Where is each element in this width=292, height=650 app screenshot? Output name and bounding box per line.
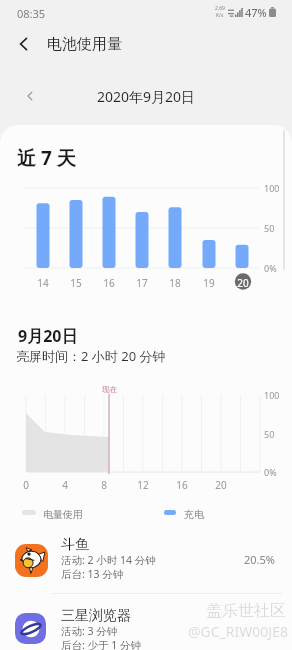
staticText: 亮屏时间：2 小时 20 分钟 <box>16 347 166 365</box>
staticText: 9月20日 <box>18 325 78 347</box>
staticText: 4 <box>55 478 75 492</box>
button[interactable]: 三星浏览器 <box>0 599 292 650</box>
staticText: 19 <box>199 276 219 290</box>
staticText: 20 <box>233 276 253 290</box>
staticText: 斗鱼 <box>61 536 89 554</box>
staticText: 50 <box>264 428 275 440</box>
staticText: 后台: 少于 1 分钟 <box>61 638 142 650</box>
staticText: 100 <box>264 182 280 194</box>
staticText: 17 <box>132 276 152 290</box>
staticText: 47% <box>245 5 267 20</box>
staticText: 活动: 2 小时 14 分钟 <box>61 553 156 567</box>
staticText: K/s <box>216 12 224 19</box>
staticText: 16 <box>172 478 192 492</box>
staticText: 近 7 天 <box>17 145 76 171</box>
staticText: 12 <box>133 478 153 492</box>
staticText: 三星浏览器 <box>61 607 131 625</box>
button[interactable]: Back <box>0 26 47 62</box>
staticText: 0% <box>264 466 277 478</box>
staticText: 20 <box>211 478 231 492</box>
staticText: 活动: 3 分钟 <box>61 624 118 638</box>
staticText: 现在 <box>102 385 117 394</box>
staticText: 15 <box>66 276 86 290</box>
staticText: 后台: 13 分钟 <box>61 567 124 581</box>
staticText: 电池使用量 <box>47 35 122 54</box>
staticText: 充电 <box>184 508 204 521</box>
button[interactable]: 斗鱼 <box>0 528 292 593</box>
staticText: 0 <box>16 478 36 492</box>
staticText: 2.69 <box>215 5 225 12</box>
staticText: 08:35 <box>17 6 46 21</box>
staticText: 0% <box>264 262 277 274</box>
staticText: 14 <box>33 276 53 290</box>
staticText: 20.5% <box>244 552 275 567</box>
staticText: 8 <box>94 478 114 492</box>
staticText: 盖乐世社区 <box>206 601 286 621</box>
staticText: 2020年9月20日 <box>97 87 196 106</box>
button[interactable]: Previous day <box>17 83 43 109</box>
staticText: 50 <box>264 222 275 234</box>
staticText: 18 <box>165 276 185 290</box>
staticText: 16 <box>99 276 119 290</box>
staticText: 100 <box>264 389 280 401</box>
staticText: @GC_RIW00JE8 <box>188 622 288 641</box>
staticText: 电量使用 <box>43 508 83 521</box>
